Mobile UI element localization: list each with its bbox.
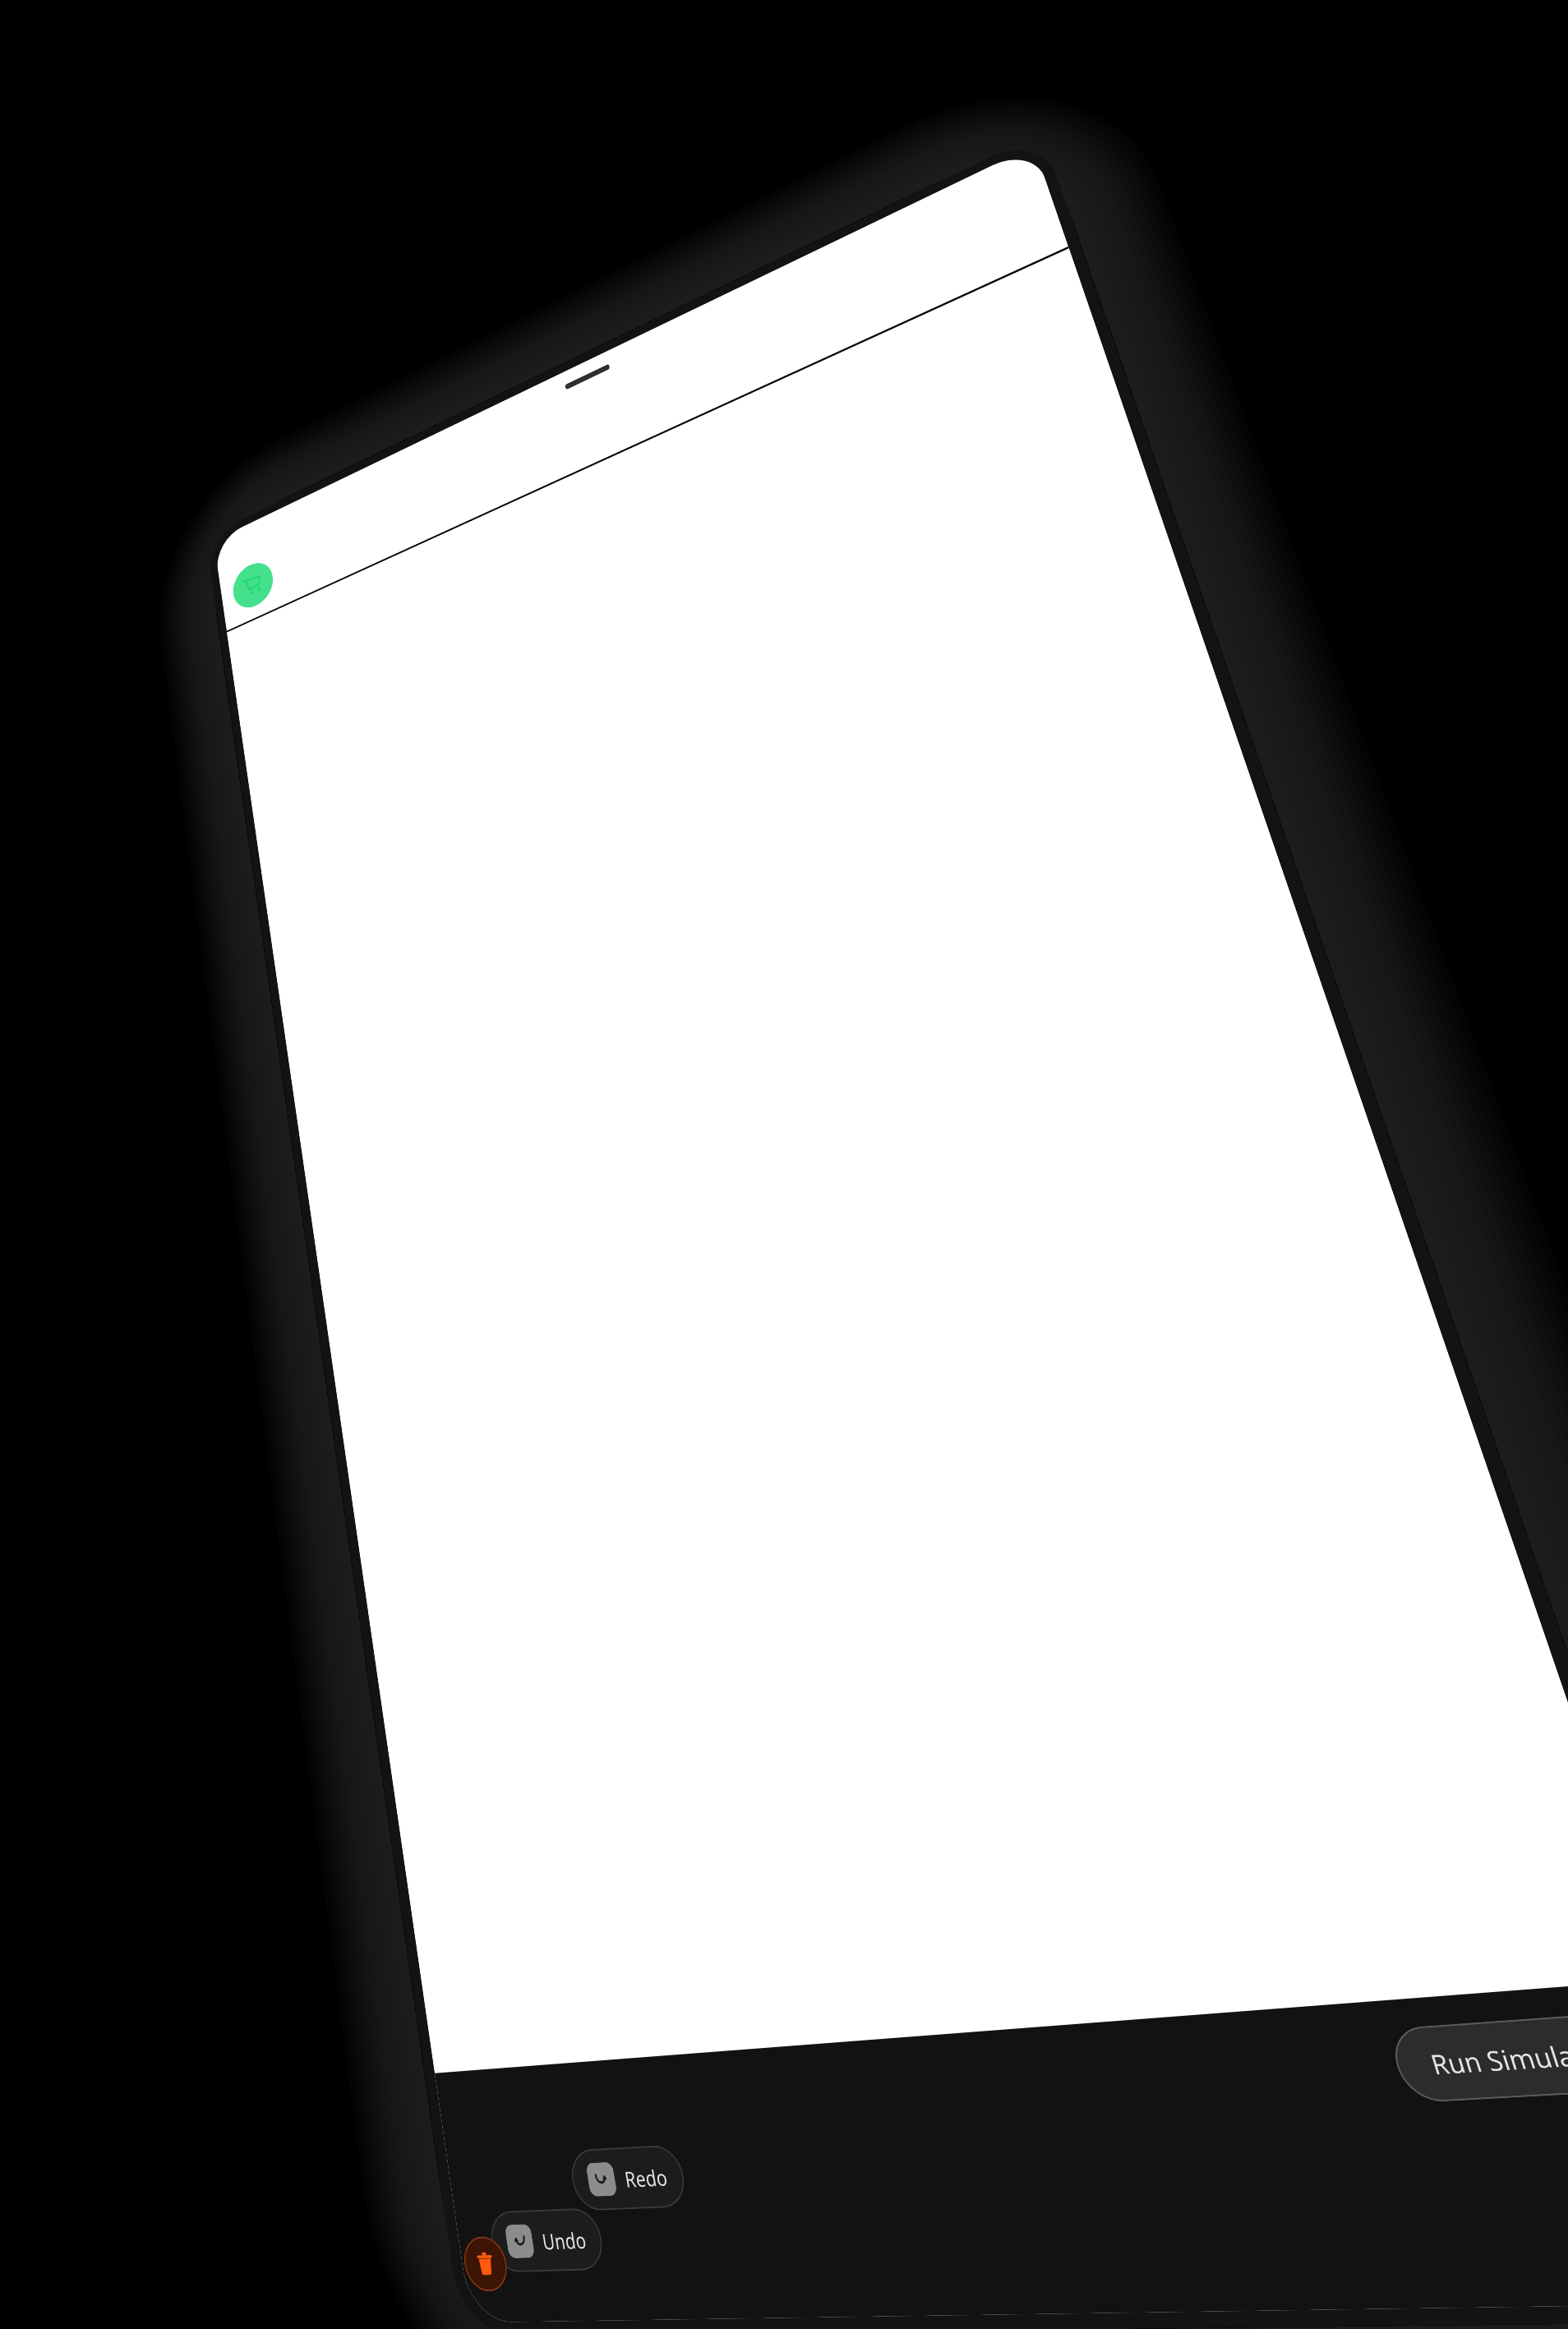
button[interactable]: Redo	[567, 2144, 689, 2211]
staticText: Undo	[540, 2225, 588, 2256]
button[interactable]: Cart	[230, 556, 276, 615]
button[interactable]: Delete	[461, 2236, 511, 2292]
staticText: Redo	[622, 2162, 670, 2194]
button[interactable]: Run Simulation	[1386, 2010, 1568, 2103]
button[interactable]: Undo	[487, 2207, 607, 2273]
staticText: Run Simulation	[1426, 2033, 1568, 2082]
